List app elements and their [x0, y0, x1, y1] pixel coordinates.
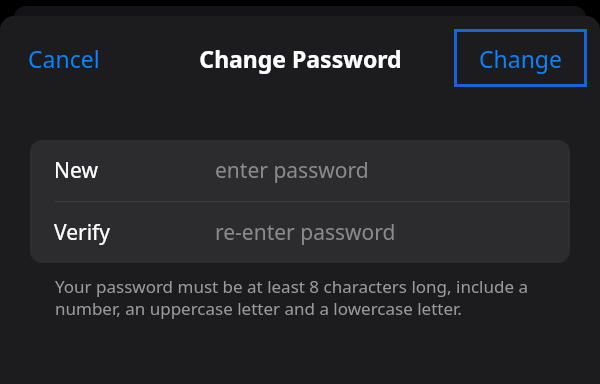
button[interactable]: New: [30, 140, 570, 201]
staticText: re-enter password: [215, 218, 396, 247]
staticText: New: [54, 156, 98, 185]
button[interactable]: Cancel: [20, 37, 108, 80]
button[interactable]: Change: [454, 29, 587, 87]
staticText: enter password: [215, 156, 369, 185]
staticText: Change Password: [199, 43, 402, 74]
staticText: Your password must be at least 8 charact…: [55, 275, 560, 320]
staticText: Cancel: [28, 43, 100, 74]
staticText: Verify: [54, 218, 111, 247]
button[interactable]: Verify: [30, 202, 570, 263]
staticText: Change: [479, 43, 562, 74]
